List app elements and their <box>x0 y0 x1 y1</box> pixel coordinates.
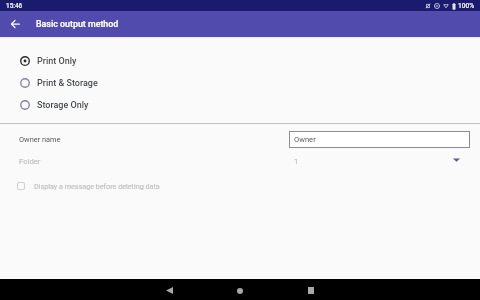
button[interactable]: Navigate up <box>0 11 31 37</box>
staticText: 15:46 <box>6 2 23 10</box>
staticText: Storage Only <box>37 100 89 111</box>
button[interactable]: Back <box>147 279 191 300</box>
button[interactable]: Owner <box>289 131 470 148</box>
staticText: Owner <box>294 135 316 144</box>
button[interactable]: Print & Storage <box>0 72 480 94</box>
staticText: Display a message before deleting data <box>34 182 160 190</box>
staticText: Basic output method <box>36 19 119 29</box>
button[interactable]: Home <box>218 279 262 300</box>
staticText: Print & Storage <box>37 78 98 89</box>
button[interactable]: Print Only <box>0 50 480 72</box>
staticText: Print Only <box>37 56 77 67</box>
staticText: Folder <box>19 157 41 166</box>
staticText: Owner name <box>19 135 61 144</box>
button[interactable]: Display a message before deleting data <box>0 177 480 194</box>
button[interactable]: Recent apps <box>289 279 333 300</box>
staticText: 1 <box>294 157 299 166</box>
staticText: 100% <box>458 2 475 10</box>
button[interactable]: Folder <box>0 152 480 170</box>
button[interactable]: Storage Only <box>0 94 480 116</box>
button[interactable]: Owner name <box>0 126 480 152</box>
